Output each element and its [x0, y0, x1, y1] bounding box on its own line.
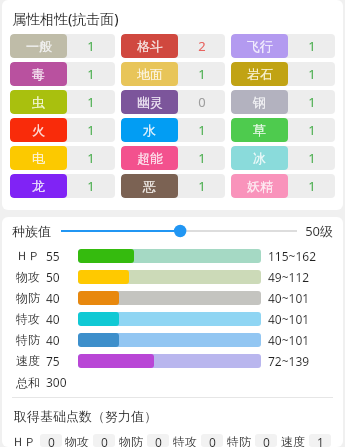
- staticText: 1: [308, 177, 316, 195]
- staticText: 40~101: [268, 311, 335, 327]
- staticText: 1: [198, 177, 206, 195]
- button[interactable]: 妖精: [231, 174, 335, 198]
- button[interactable]: 特攻: [173, 434, 225, 447]
- staticText: 总和: [16, 375, 46, 390]
- staticText: 取得基础点数（努力值）: [14, 408, 157, 424]
- staticText: 特攻: [173, 434, 197, 447]
- staticText: 钢: [253, 94, 266, 110]
- staticText: 0: [48, 434, 55, 447]
- button[interactable]: 速度: [281, 434, 333, 447]
- staticText: 虫: [32, 94, 45, 110]
- staticText: 冰: [253, 150, 266, 166]
- button[interactable]: 恶: [121, 174, 225, 198]
- staticText: 超能: [137, 150, 163, 166]
- button[interactable]: 火: [10, 118, 115, 142]
- staticText: 岩石: [247, 66, 273, 82]
- button[interactable]: Level slider: [61, 221, 297, 241]
- staticText: 40: [46, 290, 78, 306]
- button[interactable]: 虫: [10, 90, 115, 114]
- staticText: 1: [87, 149, 95, 167]
- button[interactable]: 超能: [121, 146, 225, 170]
- staticText: 属性相性(抗击面): [12, 9, 119, 28]
- staticText: 1: [308, 65, 316, 83]
- staticText: 电: [32, 150, 45, 166]
- staticText: 115~162: [268, 248, 335, 264]
- staticText: 0: [101, 434, 108, 447]
- staticText: 1: [308, 93, 316, 111]
- staticText: ＨＰ: [12, 434, 36, 447]
- staticText: 1: [87, 121, 95, 139]
- button[interactable]: 特防: [227, 434, 279, 447]
- staticText: 1: [198, 121, 206, 139]
- staticText: 幽灵: [137, 94, 163, 110]
- button[interactable]: 幽灵: [121, 90, 225, 114]
- staticText: 一般: [26, 38, 52, 54]
- staticText: 50级: [305, 222, 333, 240]
- staticText: 300: [46, 374, 67, 390]
- staticText: 1: [87, 65, 95, 83]
- staticText: 0: [198, 93, 206, 111]
- staticText: 火: [32, 122, 45, 138]
- button[interactable]: 毒: [10, 62, 115, 86]
- staticText: 1: [198, 149, 206, 167]
- staticText: 2: [198, 37, 206, 55]
- staticText: 地面: [137, 66, 163, 82]
- button[interactable]: 龙: [10, 174, 115, 198]
- staticText: 物攻: [65, 434, 89, 447]
- staticText: 1: [87, 37, 95, 55]
- button[interactable]: 冰: [231, 146, 335, 170]
- button[interactable]: ＨＰ: [12, 434, 63, 447]
- staticText: 55: [46, 248, 78, 264]
- staticText: 速度: [16, 353, 46, 368]
- button[interactable]: 水: [121, 118, 225, 142]
- staticText: 种族值: [12, 223, 51, 239]
- staticText: 40~101: [268, 290, 335, 306]
- staticText: 毒: [32, 66, 45, 82]
- staticText: 物防: [119, 434, 143, 447]
- staticText: 飞行: [247, 38, 273, 54]
- staticText: 40~101: [268, 332, 335, 348]
- button[interactable]: 物攻: [65, 434, 117, 447]
- button[interactable]: 草: [231, 118, 335, 142]
- staticText: 特攻: [16, 311, 46, 326]
- staticText: 49~112: [268, 269, 335, 285]
- staticText: 1: [308, 149, 316, 167]
- staticText: 物攻: [16, 269, 46, 284]
- staticText: 妖精: [247, 178, 273, 194]
- staticText: ＨＰ: [16, 248, 46, 263]
- staticText: 1: [87, 177, 95, 195]
- staticText: 40: [46, 332, 78, 348]
- button[interactable]: 物防: [119, 434, 171, 447]
- staticText: 1: [308, 121, 316, 139]
- staticText: 速度: [281, 434, 305, 447]
- staticText: 0: [155, 434, 162, 447]
- staticText: 1: [87, 93, 95, 111]
- button[interactable]: 钢: [231, 90, 335, 114]
- button[interactable]: 地面: [121, 62, 225, 86]
- button[interactable]: 飞行: [231, 34, 335, 58]
- staticText: 50: [46, 269, 78, 285]
- staticText: 物防: [16, 290, 46, 305]
- staticText: 1: [198, 65, 206, 83]
- staticText: 0: [209, 434, 216, 447]
- staticText: 75: [46, 353, 78, 369]
- staticText: 0: [263, 434, 270, 447]
- staticText: 40: [46, 311, 78, 327]
- button[interactable]: 一般: [10, 34, 115, 58]
- staticText: 格斗: [137, 38, 163, 54]
- staticText: 1: [308, 37, 316, 55]
- button[interactable]: 格斗: [121, 34, 225, 58]
- staticText: 72~139: [268, 353, 335, 369]
- staticText: 特防: [16, 332, 46, 347]
- staticText: 恶: [143, 178, 156, 194]
- staticText: 龙: [32, 178, 45, 194]
- staticText: 特防: [227, 434, 251, 447]
- button[interactable]: 岩石: [231, 62, 335, 86]
- staticText: 1: [317, 434, 324, 447]
- button[interactable]: 电: [10, 146, 115, 170]
- staticText: 水: [143, 122, 156, 138]
- staticText: 草: [253, 122, 266, 138]
